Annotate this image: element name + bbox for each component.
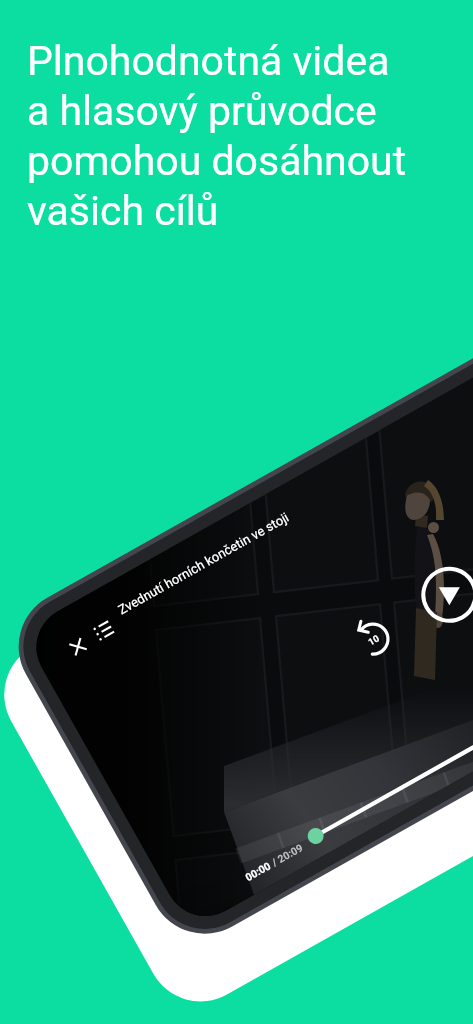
staticText: Plnohodnotná videa a hlasový průvodce po… xyxy=(27,37,407,235)
